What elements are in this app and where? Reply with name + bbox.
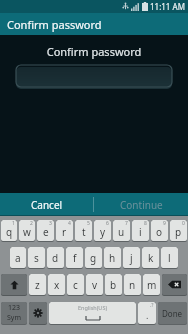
button[interactable]: x [48, 274, 65, 295]
button[interactable]: 0 [170, 220, 187, 241]
button[interactable]: d [47, 247, 64, 268]
staticText: a [15, 251, 21, 265]
staticText: j [130, 251, 133, 265]
staticText: Confirm password [7, 17, 102, 32]
button[interactable]: Done [158, 302, 187, 324]
button[interactable]: Space [49, 302, 136, 324]
button[interactable]: Cancel [0, 193, 93, 216]
staticText: 4 [68, 220, 71, 227]
button[interactable]: 6 [94, 220, 111, 241]
staticText: 8 [144, 220, 147, 227]
button[interactable]: s [28, 247, 45, 268]
button[interactable] [16, 67, 172, 89]
staticText: Sym [7, 313, 21, 323]
button[interactable]: Punctuation [138, 302, 156, 324]
staticText: 5 [87, 220, 90, 227]
button[interactable]: c [67, 274, 84, 295]
button[interactable]: h [104, 247, 121, 268]
staticText: w [23, 225, 31, 239]
staticText: 11:11 AM [150, 1, 185, 12]
button[interactable]: 123 [1, 302, 27, 324]
staticText: o [156, 225, 163, 239]
staticText: Continue [120, 198, 163, 212]
staticText: 6 [106, 220, 109, 227]
button[interactable]: 4 [56, 220, 73, 241]
staticText: v [92, 278, 98, 292]
button[interactable]: 1 [1, 220, 17, 241]
button[interactable]: k [142, 247, 159, 268]
button[interactable]: m [143, 274, 160, 295]
button[interactable]: 2 [19, 220, 35, 241]
button[interactable]: b [105, 274, 122, 295]
button[interactable]: l [161, 247, 178, 268]
staticText: b [110, 278, 117, 292]
staticText: 1 [12, 220, 15, 227]
button[interactable]: f [66, 247, 83, 268]
staticText: 3 [49, 220, 52, 227]
staticText: i [139, 225, 142, 239]
staticText: t [82, 225, 86, 239]
staticText: r [62, 225, 67, 239]
staticText: c [73, 278, 78, 292]
staticText: s [34, 251, 39, 265]
staticText: l [168, 251, 171, 265]
button[interactable]: j [123, 247, 140, 268]
staticText: 2 [30, 220, 33, 227]
staticText: u [118, 225, 125, 239]
staticText: . [146, 309, 149, 321]
button[interactable]: Backspace [162, 274, 187, 295]
staticText: Cancel [31, 198, 63, 212]
button[interactable]: Keyboard settings [29, 302, 47, 324]
staticText: Confirm password [0, 44, 188, 59]
staticText: q [6, 225, 13, 239]
button[interactable]: Shift [1, 274, 27, 295]
button[interactable]: z [29, 274, 46, 295]
button[interactable]: 3 [37, 220, 54, 241]
button[interactable]: 7 [113, 220, 130, 241]
button[interactable]: Continue [94, 193, 188, 216]
staticText: e [43, 225, 49, 239]
staticText: h [109, 251, 116, 265]
button[interactable]: a [10, 247, 26, 268]
staticText: English(US) [78, 304, 108, 311]
button[interactable]: n [124, 274, 141, 295]
staticText: f [73, 251, 77, 265]
staticText: 9 [163, 220, 166, 227]
staticText: 123 [8, 303, 21, 313]
button[interactable]: g [85, 247, 102, 268]
button[interactable]: v [86, 274, 103, 295]
staticText: m [147, 278, 157, 292]
staticText: 7 [125, 220, 128, 227]
staticText: g [90, 251, 97, 265]
staticText: d [52, 251, 59, 265]
button[interactable]: 9 [151, 220, 168, 241]
staticText: k [148, 251, 154, 265]
staticText: p [175, 225, 182, 239]
staticText: y [100, 225, 106, 239]
staticText: 0 [182, 220, 185, 227]
staticText: x [54, 278, 60, 292]
staticText: z [35, 278, 40, 292]
button[interactable]: 8 [132, 220, 149, 241]
button[interactable]: 5 [75, 220, 92, 241]
staticText: Done [162, 308, 183, 319]
staticText: n [129, 278, 136, 292]
staticText: .? [150, 302, 154, 309]
